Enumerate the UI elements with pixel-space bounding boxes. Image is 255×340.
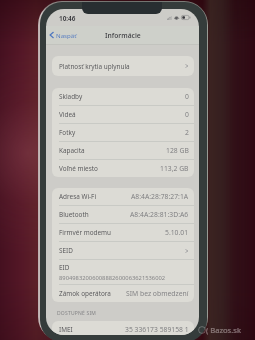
staticText: EID [59,263,70,272]
staticText: IMEI [59,325,73,334]
button[interactable]: Zámok operátora [52,285,194,302]
staticText: 35 336173 589158 1 [125,325,189,334]
button[interactable]: Adresa Wi-Fi [52,188,194,205]
button[interactable]: IMEI [52,321,194,335]
staticText: 10:46 [59,14,76,23]
staticText: 2 [185,128,189,137]
staticText: Bluetooth [59,210,89,219]
staticText: ( Bazos.sk [206,325,241,335]
button[interactable]: Naspäť [46,26,81,44]
staticText: Zámok operátora [59,289,111,298]
staticText: 89049832006008882600063621536002 [59,274,166,282]
button[interactable]: Skladby [52,88,194,105]
button[interactable]: Firmvér modemu [52,224,194,241]
staticText: 5.10.01 [165,228,189,237]
button[interactable]: Videá [52,106,194,123]
staticText: Fotky [59,128,76,137]
button[interactable]: Voľné miesto [52,160,194,177]
button[interactable]: Fotky [52,124,194,141]
staticText: Informácie [105,31,141,40]
staticText: Kapacita [59,146,85,155]
staticText: 113,2 GB [160,164,189,173]
button[interactable]: EID [52,260,194,284]
staticText: Videá [59,110,76,119]
button[interactable]: Platnosť krytia uplynula [52,56,194,76]
staticText: Skladby [59,92,83,101]
staticText: 0 [185,92,189,101]
button[interactable]: SEID [52,242,194,259]
button[interactable]: Bluetooth [52,206,194,223]
staticText: A8:4A:28:81:3D:A6 [130,210,189,219]
staticText: DOSTUPNÉ SIM [57,310,97,317]
staticText: 128 GB [166,146,189,155]
staticText: Firmvér modemu [59,228,112,237]
staticText: A8:4A:28:78:27:1A [131,192,189,201]
staticText: SIM bez obmedzení [126,289,189,298]
staticText: 0 [185,110,189,119]
staticText: Adresa Wi-Fi [59,192,97,201]
button[interactable]: Kapacita [52,142,194,159]
staticText: Voľné miesto [59,164,98,173]
staticText: Platnosť krytia uplynula [59,62,130,71]
staticText: Naspäť [56,31,77,39]
staticText: SEID [59,246,73,255]
